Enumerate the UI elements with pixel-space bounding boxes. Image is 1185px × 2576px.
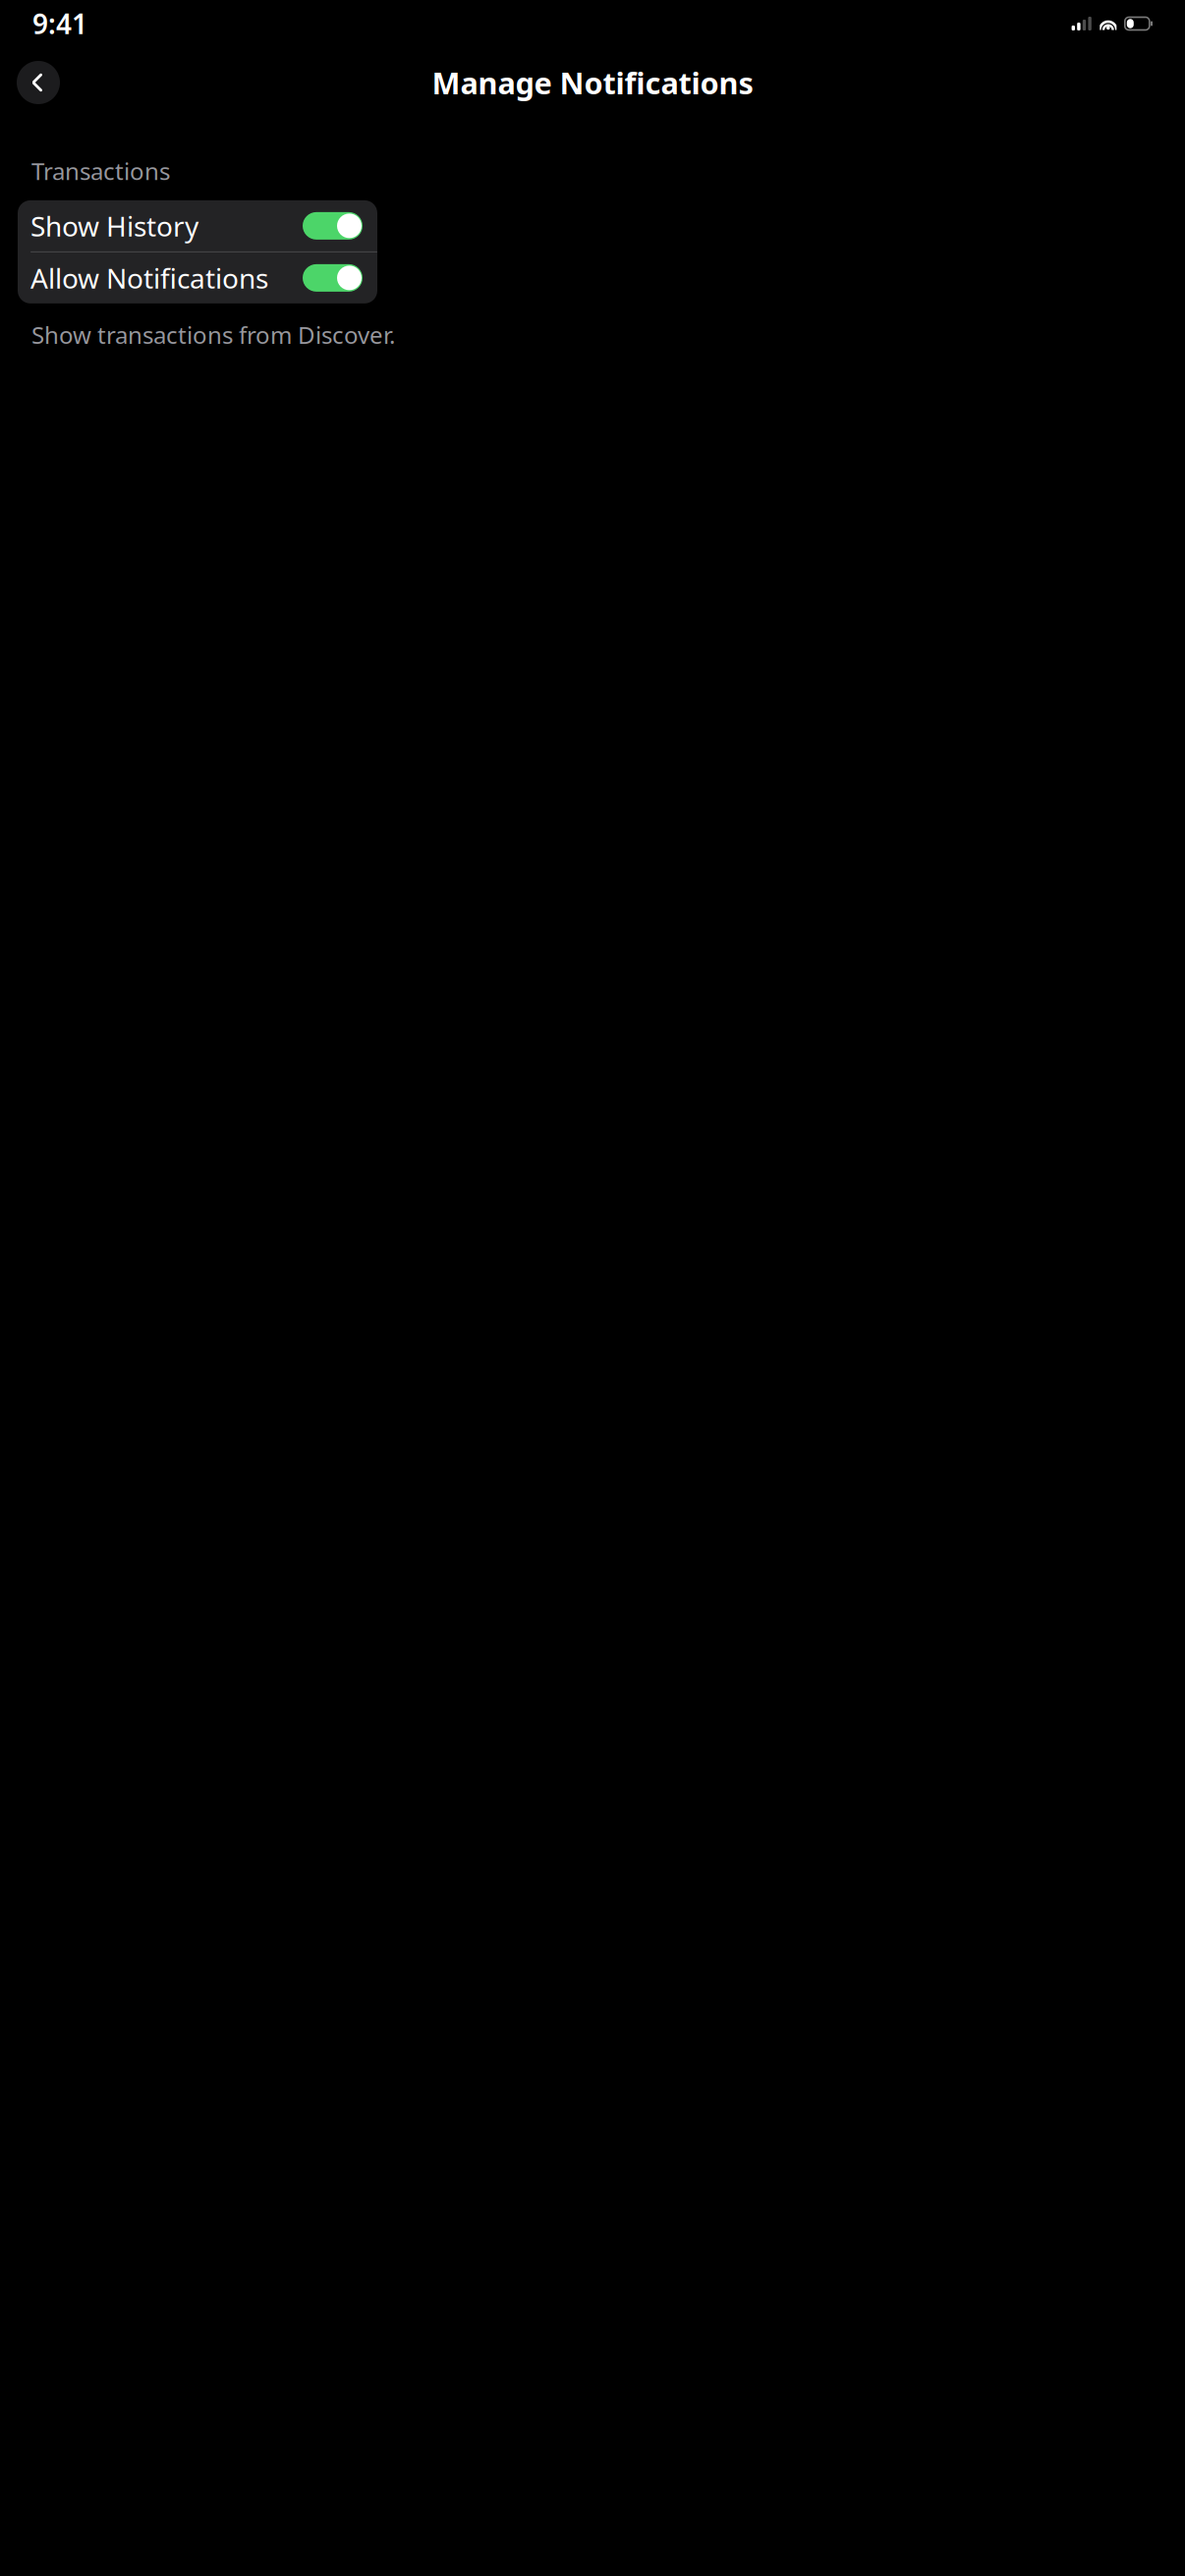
button[interactable]: Allow Notifications [18, 252, 377, 303]
button[interactable]: Back [17, 61, 60, 104]
staticText: Allow Notifications [30, 260, 268, 296]
staticText: Show History [30, 208, 198, 244]
staticText: Transactions [31, 155, 170, 187]
staticText: 9:41 [32, 5, 87, 42]
staticText: Manage Notifications [432, 62, 753, 102]
button[interactable]: Show History [18, 200, 377, 251]
staticText: Show transactions from Discover. [31, 319, 395, 351]
